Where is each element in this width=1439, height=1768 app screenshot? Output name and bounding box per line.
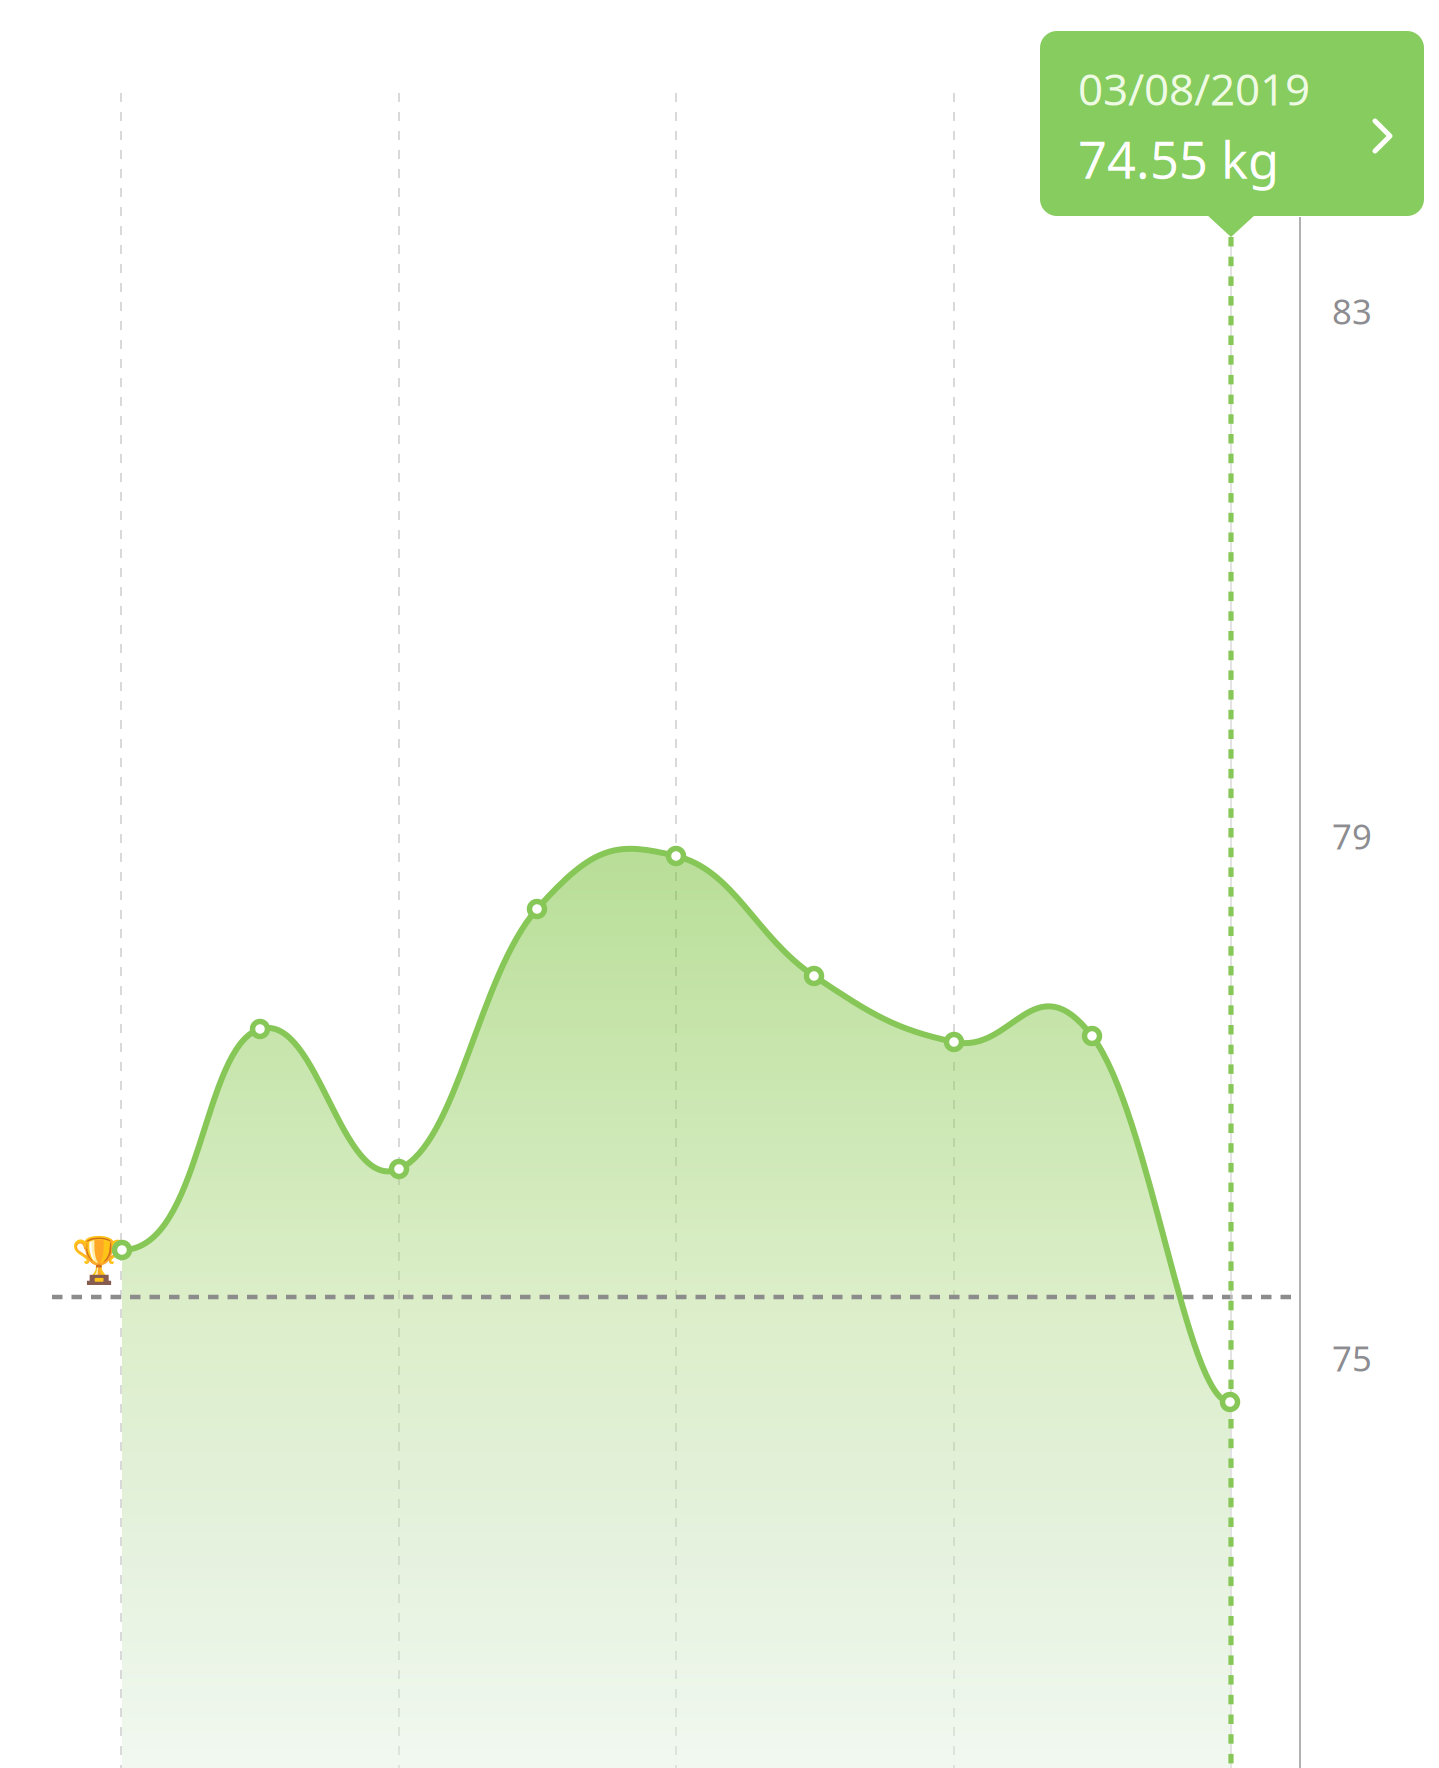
staticText: 83 bbox=[1332, 288, 1372, 334]
staticText: 74.55 kg bbox=[1078, 126, 1279, 193]
staticText: 03/08/2019 bbox=[1078, 59, 1310, 117]
staticText: 🏆 bbox=[71, 1235, 127, 1287]
button[interactable]: 03/08/2019 bbox=[0, 0, 1439, 1768]
staticText: 75 bbox=[1332, 1335, 1372, 1381]
staticText: 79 bbox=[1332, 813, 1372, 859]
